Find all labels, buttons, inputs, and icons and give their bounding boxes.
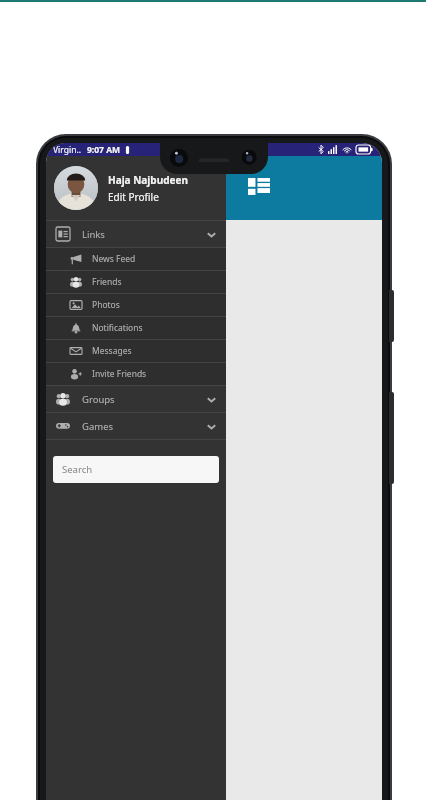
button[interactable]: News Feed [46, 248, 226, 270]
staticText: Notifications [92, 322, 143, 334]
button[interactable]: Profile photo [46, 156, 226, 220]
staticText: Games [82, 420, 114, 433]
staticText: Messages [92, 345, 132, 357]
button[interactable]: Games [46, 413, 226, 439]
button[interactable]: Search [53, 456, 219, 483]
staticText: Links [82, 228, 105, 241]
button[interactable]: Friends [46, 271, 226, 293]
staticText: Search [62, 463, 93, 476]
button[interactable]: Open dashboard [246, 176, 272, 202]
button[interactable]: Profile photo [54, 166, 98, 210]
staticText: 9:07 AM [87, 144, 121, 156]
staticText: Virgin.. [53, 144, 81, 156]
staticText: Edit Profile [108, 190, 159, 204]
staticText: Invite Friends [92, 368, 147, 380]
button[interactable]: Messages [46, 340, 226, 362]
button[interactable]: Links [46, 221, 226, 247]
staticText: News Feed [92, 253, 136, 265]
staticText: Haja Najbudeen [108, 173, 188, 187]
staticText: Groups [82, 393, 115, 406]
button[interactable]: Invite Friends [46, 363, 226, 385]
staticText: Photos [92, 299, 120, 311]
staticText: Friends [92, 276, 122, 288]
button[interactable]: Photos [46, 294, 226, 316]
button[interactable]: Notifications [46, 317, 226, 339]
button[interactable]: Groups [46, 386, 226, 412]
